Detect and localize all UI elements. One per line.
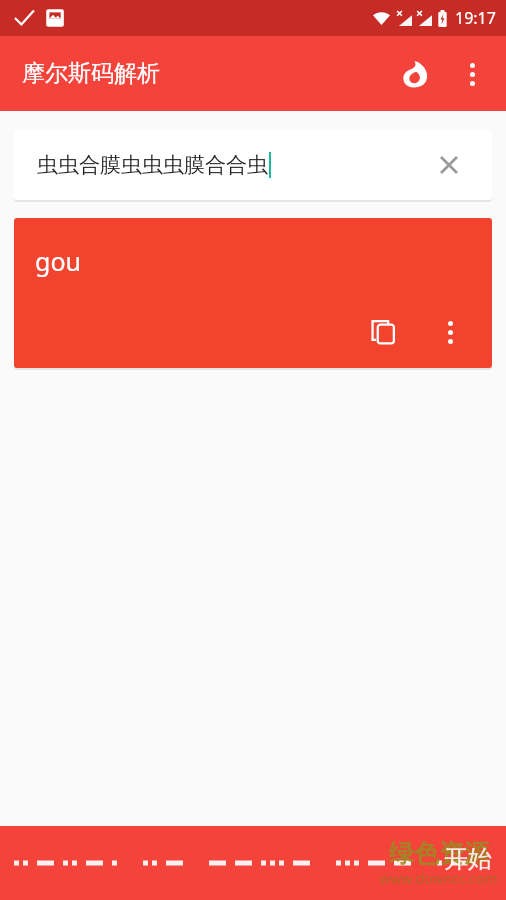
staticText: www.downcc.com [379, 869, 498, 888]
button[interactable]: More options [430, 312, 470, 352]
button[interactable]: More options [448, 50, 496, 98]
staticText: 虫虫合膜虫虫虫膜合合虫 [37, 152, 268, 178]
staticText: 开始 [444, 844, 492, 874]
button[interactable]: 绿色资源 [0, 826, 506, 900]
button[interactable]: Copy [362, 310, 406, 354]
staticText: gou [35, 244, 81, 278]
button[interactable]: 虫虫合膜虫虫虫膜合合虫 [14, 130, 492, 200]
staticText: 绿色资源 [389, 838, 489, 869]
staticText: 摩尔斯码解析 [22, 59, 160, 88]
button[interactable]: gou [14, 218, 492, 368]
button[interactable]: Flame [390, 50, 438, 98]
staticText: 19:17 [455, 7, 496, 29]
button[interactable]: Clear text [432, 148, 466, 182]
